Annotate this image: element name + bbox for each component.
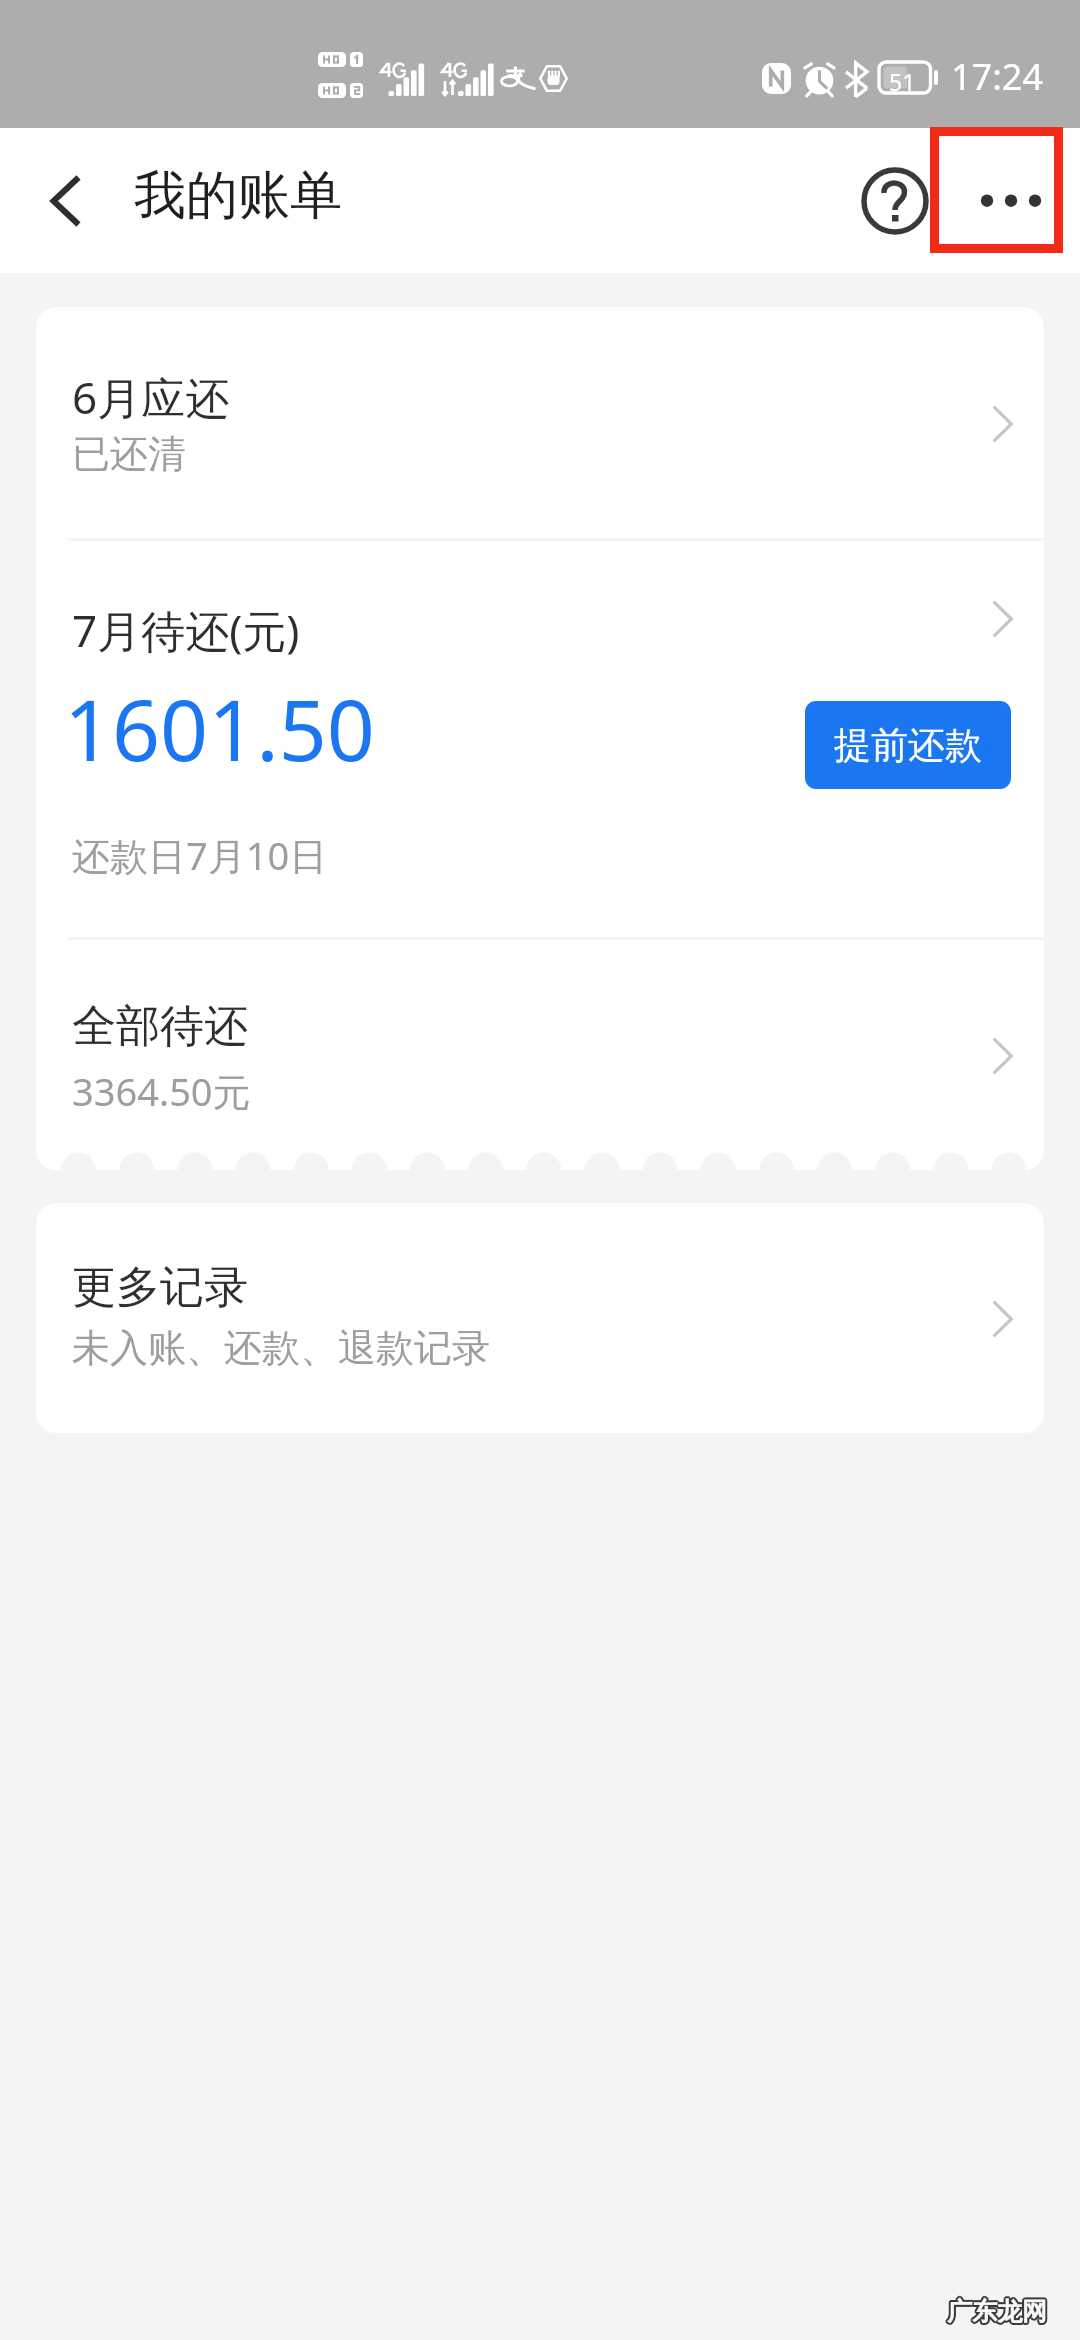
staticText: 51 — [889, 66, 916, 97]
staticText: 全部待还 — [72, 999, 248, 1054]
staticText: 提前还款 — [834, 722, 982, 769]
staticText: 还款日7月10日 — [72, 829, 328, 881]
staticText: 广东龙网 — [947, 2294, 1047, 2325]
staticText: 7月待还(元) — [72, 600, 300, 660]
button[interactable]: 全部待还 — [36, 939, 1044, 1170]
button[interactable]: Help — [847, 128, 942, 273]
button[interactable]: 提前还款 — [805, 701, 1011, 789]
staticText: 广东龙网 — [947, 2296, 1047, 2327]
staticText: 广东龙网 — [949, 2295, 1049, 2326]
staticText: 3364.50元 — [72, 1065, 251, 1117]
staticText: 广东龙网 — [949, 2297, 1049, 2328]
staticText: 广东龙网 — [945, 2295, 1045, 2326]
staticText: 6月应还 — [72, 367, 230, 427]
button[interactable]: 更多记录 — [36, 1203, 1044, 1433]
staticText: 广东龙网 — [948, 2294, 1048, 2325]
staticText: 广东龙网 — [949, 2296, 1049, 2327]
button[interactable]: Back — [16, 128, 116, 273]
button[interactable]: 6月应还 — [36, 307, 1044, 538]
staticText: 广东龙网 — [948, 2298, 1048, 2329]
staticText: 广东龙网 — [946, 2298, 1046, 2329]
staticText: 广东龙网 — [947, 2298, 1047, 2329]
staticText: 1601.50 — [64, 671, 375, 785]
staticText: 已还清 — [72, 430, 186, 478]
staticText: 广东龙网 — [946, 2294, 1046, 2325]
staticText: 未入账、还款、退款记录 — [72, 1324, 490, 1372]
staticText: 广东龙网 — [945, 2296, 1045, 2327]
staticText: 17:24 — [951, 52, 1044, 101]
button[interactable]: More options — [930, 127, 1063, 253]
staticText: 更多记录 — [72, 1260, 248, 1315]
button[interactable]: 7月待还(元) — [36, 540, 1044, 937]
staticText: 我的账单 — [134, 163, 342, 229]
staticText: 广东龙网 — [945, 2297, 1045, 2328]
